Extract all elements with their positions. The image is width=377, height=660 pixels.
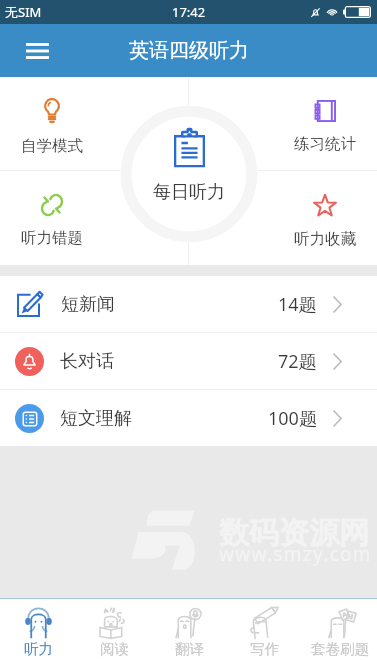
staticText: 每日听力 xyxy=(153,181,225,204)
staticText: 听力错题 xyxy=(21,228,83,248)
staticText: 自学模式 xyxy=(21,136,83,156)
staticText: 14题 xyxy=(278,292,317,317)
staticText: 短新闻 xyxy=(61,293,115,316)
staticText: 72题 xyxy=(278,349,317,374)
button[interactable]: 听力收藏 xyxy=(189,171,377,265)
button[interactable]: 长对话 xyxy=(0,333,377,389)
staticText: 阅读 xyxy=(100,640,129,658)
button[interactable]: 听力 xyxy=(0,599,76,660)
staticText: 英语四级听力 xyxy=(129,38,249,63)
button[interactable]: 听力错题 xyxy=(0,171,188,265)
button[interactable]: 练习统计 xyxy=(189,77,377,170)
staticText: 数码资源网 xyxy=(219,514,369,552)
staticText: 套卷刷题 xyxy=(311,640,369,658)
button[interactable]: 翻译 xyxy=(152,599,227,660)
button[interactable]: Menu xyxy=(13,27,61,75)
button[interactable]: 短文理解 xyxy=(0,390,377,446)
button[interactable]: 每日听力 xyxy=(120,105,258,243)
staticText: 长对话 xyxy=(60,350,114,373)
staticText: 听力 xyxy=(24,640,53,658)
button[interactable]: 短新闻 xyxy=(0,276,377,332)
staticText: 无SIM xyxy=(5,3,42,21)
staticText: 练习统计 xyxy=(294,134,356,154)
staticText: 短文理解 xyxy=(60,407,132,430)
button[interactable]: 套卷刷题 xyxy=(302,599,377,660)
staticText: 17:42 xyxy=(172,3,206,21)
staticText: www.smzy.com xyxy=(219,541,372,567)
button[interactable]: 写作 xyxy=(227,599,302,660)
staticText: 听力收藏 xyxy=(294,229,356,249)
staticText: 100题 xyxy=(268,406,317,431)
staticText: 写作 xyxy=(250,640,279,658)
button[interactable]: 自学模式 xyxy=(0,77,188,170)
staticText: 翻译 xyxy=(175,640,204,658)
button[interactable]: 阅读 xyxy=(76,599,152,660)
